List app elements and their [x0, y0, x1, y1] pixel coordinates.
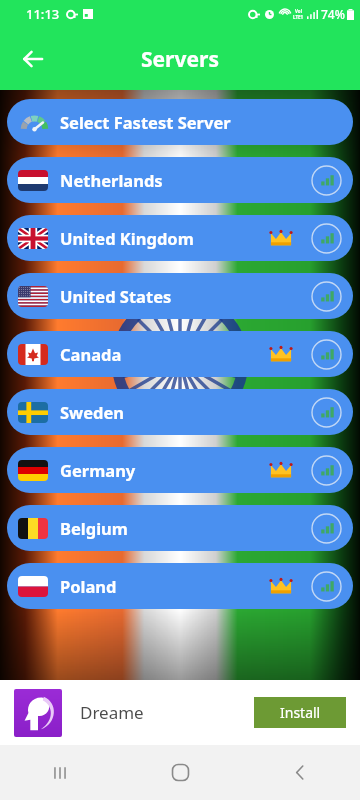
button[interactable]: Home: [120, 745, 240, 800]
button[interactable]: Canada: [7, 331, 353, 377]
staticText: United States: [60, 285, 172, 307]
button[interactable]: United Kingdom: [7, 215, 353, 261]
staticText: Install: [280, 703, 321, 722]
staticText: United Kingdom: [60, 227, 194, 249]
button[interactable]: Poland: [7, 563, 353, 609]
staticText: Netherlands: [60, 169, 163, 191]
staticText: Vol: [295, 8, 302, 14]
button[interactable]: Recent apps: [0, 745, 120, 800]
staticText: Belgium: [60, 517, 128, 539]
staticText: Poland: [60, 575, 117, 597]
staticText: LTE1: [293, 14, 304, 20]
button[interactable]: Back: [12, 38, 54, 80]
staticText: Sweden: [60, 401, 125, 423]
button[interactable]: Belgium: [7, 505, 353, 551]
staticText: 11:13: [26, 5, 60, 23]
button[interactable]: Dreame: [0, 680, 360, 745]
button[interactable]: United States: [7, 273, 353, 319]
button[interactable]: Back: [240, 745, 360, 800]
button[interactable]: Install: [254, 697, 346, 728]
staticText: Canada: [60, 343, 122, 365]
button[interactable]: Netherlands: [7, 157, 353, 203]
button[interactable]: Germany: [7, 447, 353, 493]
staticText: Dreame: [80, 701, 144, 724]
button[interactable]: Select Fastest Server: [7, 99, 353, 145]
staticText: Germany: [60, 459, 136, 481]
staticText: Servers: [141, 45, 219, 74]
staticText: 74%: [321, 6, 345, 22]
staticText: Select Fastest Server: [60, 111, 231, 133]
button[interactable]: Sweden: [7, 389, 353, 435]
